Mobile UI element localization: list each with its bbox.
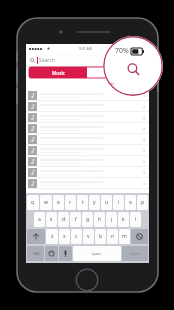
staticText: t bbox=[82, 199, 84, 206]
button[interactable]: e bbox=[53, 195, 64, 210]
staticText: l bbox=[135, 216, 137, 223]
staticText: k bbox=[122, 216, 125, 223]
button[interactable]: space bbox=[73, 246, 121, 261]
button[interactable]: p bbox=[137, 195, 148, 210]
button[interactable]: b bbox=[95, 229, 106, 244]
button[interactable]: Shift bbox=[27, 229, 45, 244]
staticText: Artist bbox=[104, 81, 115, 86]
staticText: o bbox=[129, 199, 133, 206]
button[interactable]: t bbox=[77, 195, 88, 210]
button[interactable] bbox=[26, 178, 149, 189]
staticText: i bbox=[118, 199, 120, 206]
button[interactable]: k bbox=[118, 212, 129, 227]
button[interactable] bbox=[26, 123, 149, 134]
staticText: j bbox=[111, 216, 113, 223]
button[interactable] bbox=[26, 145, 149, 156]
button[interactable] bbox=[26, 112, 149, 123]
button[interactable]: o bbox=[125, 195, 136, 210]
staticText: w bbox=[44, 199, 48, 206]
staticText: v bbox=[87, 233, 90, 240]
button[interactable] bbox=[26, 156, 149, 167]
staticText: u bbox=[105, 199, 109, 206]
staticText: g bbox=[86, 216, 90, 223]
other: Search magnified bbox=[103, 36, 163, 96]
staticText: y bbox=[93, 199, 96, 206]
staticText: r bbox=[69, 199, 72, 206]
button[interactable]: n bbox=[107, 229, 118, 244]
staticText: s bbox=[50, 216, 53, 223]
staticText: b bbox=[99, 233, 103, 240]
staticText: d bbox=[62, 216, 66, 223]
staticText: Music bbox=[52, 70, 65, 76]
button[interactable]: Backspace bbox=[131, 229, 148, 244]
button[interactable]: Search bbox=[26, 53, 149, 67]
staticText: Search bbox=[130, 251, 141, 256]
button[interactable]: Music bbox=[29, 67, 87, 78]
button[interactable]: f bbox=[70, 212, 81, 227]
staticText: f bbox=[75, 216, 77, 223]
button[interactable]: a bbox=[34, 212, 45, 227]
staticText: h bbox=[98, 216, 102, 223]
button[interactable]: r bbox=[65, 195, 76, 210]
button[interactable] bbox=[26, 134, 149, 145]
staticText: 9:41 AM bbox=[79, 46, 92, 51]
button[interactable]: y bbox=[89, 195, 100, 210]
button[interactable]: w bbox=[40, 195, 52, 210]
staticText: 70% bbox=[115, 46, 129, 56]
staticText: p bbox=[141, 199, 145, 206]
staticText: x bbox=[63, 233, 66, 240]
staticText: 123 bbox=[33, 251, 39, 256]
button[interactable]: m bbox=[119, 229, 130, 244]
button[interactable]: Emoji bbox=[45, 246, 58, 261]
button[interactable]: z bbox=[46, 229, 58, 244]
button[interactable] bbox=[26, 101, 149, 112]
button[interactable]: s bbox=[46, 212, 57, 227]
staticText: space bbox=[92, 251, 102, 256]
staticText: n bbox=[111, 233, 115, 240]
button[interactable]: u bbox=[101, 195, 112, 210]
button[interactable] bbox=[26, 167, 149, 178]
button[interactable]: Dictation bbox=[59, 246, 72, 261]
staticText: z bbox=[51, 233, 54, 240]
button[interactable] bbox=[26, 90, 149, 101]
button[interactable]: 123 bbox=[27, 246, 44, 261]
staticText: q bbox=[31, 199, 35, 206]
staticText: m bbox=[122, 233, 127, 240]
button[interactable]: v bbox=[83, 229, 94, 244]
button[interactable]: Artist bbox=[87, 67, 146, 78]
button[interactable]: d bbox=[58, 212, 69, 227]
button[interactable]: g bbox=[82, 212, 93, 227]
button[interactable]: Search bbox=[122, 246, 148, 261]
button[interactable]: x bbox=[59, 229, 70, 244]
button[interactable]: l bbox=[130, 212, 141, 227]
staticText: c bbox=[75, 233, 78, 240]
button[interactable]: j bbox=[106, 212, 117, 227]
button[interactable]: i bbox=[113, 195, 124, 210]
staticText: a bbox=[38, 216, 41, 223]
staticText: e bbox=[57, 199, 60, 206]
staticText: Search bbox=[39, 57, 55, 64]
button[interactable]: c bbox=[71, 229, 82, 244]
button[interactable]: q bbox=[27, 195, 39, 210]
button[interactable]: h bbox=[94, 212, 105, 227]
